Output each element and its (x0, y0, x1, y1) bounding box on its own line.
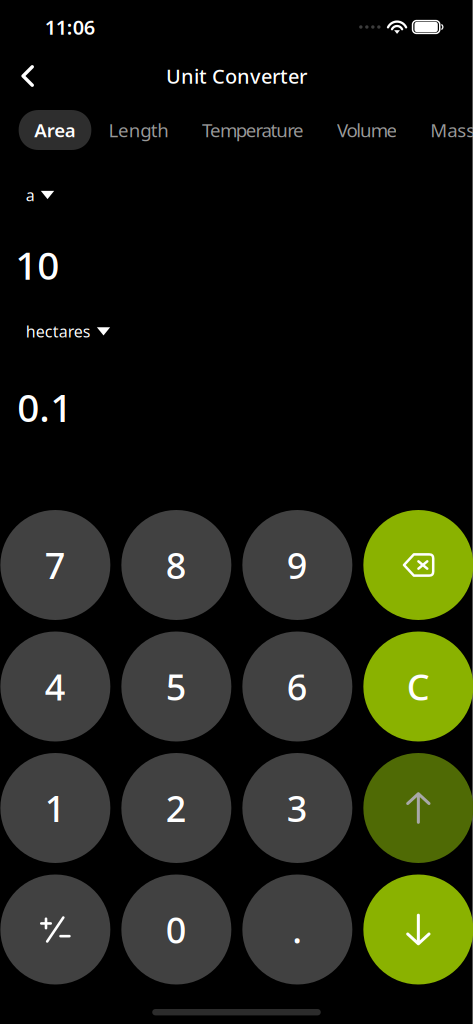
button[interactable]: Convert up (363, 753, 473, 863)
staticText: C (407, 663, 430, 710)
staticText: 6 (287, 663, 308, 710)
button[interactable]: C (363, 631, 473, 741)
staticText: Temperature (202, 118, 304, 142)
button[interactable]: Mass (415, 110, 473, 150)
button[interactable]: a (26, 187, 54, 203)
button[interactable]: 5 (121, 631, 231, 741)
button[interactable]: 3 (242, 753, 352, 863)
staticText: . (292, 906, 302, 953)
button[interactable]: Area (19, 110, 91, 150)
button[interactable]: Length (93, 110, 185, 150)
button[interactable]: Back (0, 54, 50, 98)
staticText: 9 (287, 541, 308, 589)
button[interactable]: Toggle sign (0, 874, 110, 984)
button[interactable]: 6 (242, 631, 352, 741)
button[interactable]: Temperature (186, 110, 320, 150)
staticText: 11:06 (45, 14, 95, 40)
staticText: Area (34, 118, 76, 142)
staticText: Volume (337, 118, 397, 142)
button[interactable]: 0 (121, 874, 231, 984)
staticText: 8 (166, 541, 187, 589)
staticText: 1 (45, 784, 66, 832)
staticText: 4 (45, 663, 66, 710)
staticText: Unit Converter (166, 63, 307, 89)
button[interactable]: 8 (121, 510, 231, 620)
staticText: 7 (45, 541, 66, 589)
button[interactable]: . (242, 874, 352, 984)
button[interactable]: Convert down (363, 874, 473, 984)
staticText: Mass (430, 118, 473, 142)
button[interactable]: hectares (26, 323, 110, 339)
staticText: 5 (166, 663, 187, 710)
staticText: 10 (15, 239, 59, 290)
staticText: hectares (26, 321, 91, 342)
button[interactable]: Volume (321, 110, 413, 150)
staticText: 2 (166, 784, 187, 832)
staticText: 3 (287, 784, 308, 832)
staticText: a (26, 184, 35, 206)
staticText: Length (108, 118, 169, 142)
button[interactable]: 4 (0, 631, 110, 741)
button[interactable]: 1 (0, 753, 110, 863)
button[interactable]: 9 (242, 510, 352, 620)
staticText: 0.1 (17, 381, 72, 433)
staticText: 0 (166, 906, 187, 953)
button[interactable]: 7 (0, 510, 110, 620)
button[interactable]: 2 (121, 753, 231, 863)
button[interactable]: Delete (363, 510, 473, 620)
